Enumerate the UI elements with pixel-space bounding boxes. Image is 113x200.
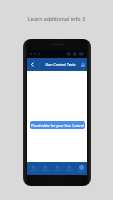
staticText: Learn additional info 3 [0,15,113,22]
button[interactable]: Back [28,60,37,69]
staticText: Gun Control Texts [45,62,76,67]
button[interactable]: Status [39,162,51,175]
button[interactable]: Secure [78,60,87,69]
button[interactable]: Placeholder for your Gun Control Texts [30,121,85,129]
staticText: Placeholder for your Gun Control Texts [30,123,85,128]
button[interactable]: Chats [27,162,39,175]
button[interactable]: Calls [51,162,63,175]
button[interactable]: Me [75,162,87,175]
button[interactable]: Info [63,162,75,175]
